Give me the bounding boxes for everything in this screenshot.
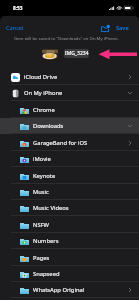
- staticText: Numbers: [33, 237, 59, 245]
- button[interactable]: New Folder: [98, 22, 112, 35]
- staticText: Item will be saved to "Downloads" on On …: [14, 35, 119, 41]
- staticText: Downloads: [33, 122, 64, 130]
- staticText: 8:53: [13, 5, 23, 12]
- button[interactable]: Music Videos: [0, 200, 139, 216]
- button[interactable]: Keynote: [0, 168, 139, 184]
- button[interactable]: Snapseed: [0, 266, 139, 282]
- staticText: Chrome: [33, 106, 55, 114]
- staticText: Music Videos: [33, 204, 69, 212]
- button[interactable]: Pages: [0, 250, 139, 266]
- button[interactable]: Numbers: [0, 233, 139, 249]
- staticText: Cancel: [6, 24, 24, 32]
- button[interactable]: Chrome: [0, 102, 139, 118]
- button[interactable]: iMovie: [0, 151, 139, 167]
- staticText: Keynote: [33, 172, 56, 180]
- button[interactable]: Music: [0, 184, 139, 200]
- button[interactable]: IMG_3234: [64, 49, 89, 58]
- button[interactable]: Save: [112, 21, 133, 35]
- staticText: Snapseed: [33, 270, 60, 278]
- staticText: WhatsApp Original: [33, 286, 85, 294]
- button[interactable]: GarageBand for iOS: [0, 135, 139, 151]
- button[interactable]: WhatsApp Original: [0, 282, 139, 298]
- staticText: Pages: [33, 254, 50, 262]
- button[interactable]: Cancel: [2, 21, 28, 35]
- button[interactable]: On My iPhone: [0, 85, 139, 101]
- staticText: Music: [33, 188, 49, 196]
- button[interactable]: NSFW: [0, 217, 139, 233]
- staticText: NSFW: [33, 221, 49, 229]
- button[interactable]: iCloud Drive: [0, 69, 139, 85]
- button[interactable]: Downloads: [0, 118, 139, 134]
- staticText: On My iPhone: [24, 89, 63, 97]
- staticText: GarageBand for iOS: [33, 139, 88, 147]
- staticText: iCloud Drive: [24, 73, 58, 81]
- staticText: Save: [116, 24, 129, 32]
- staticText: IMG_3234: [65, 50, 89, 57]
- staticText: iMovie: [33, 155, 51, 163]
